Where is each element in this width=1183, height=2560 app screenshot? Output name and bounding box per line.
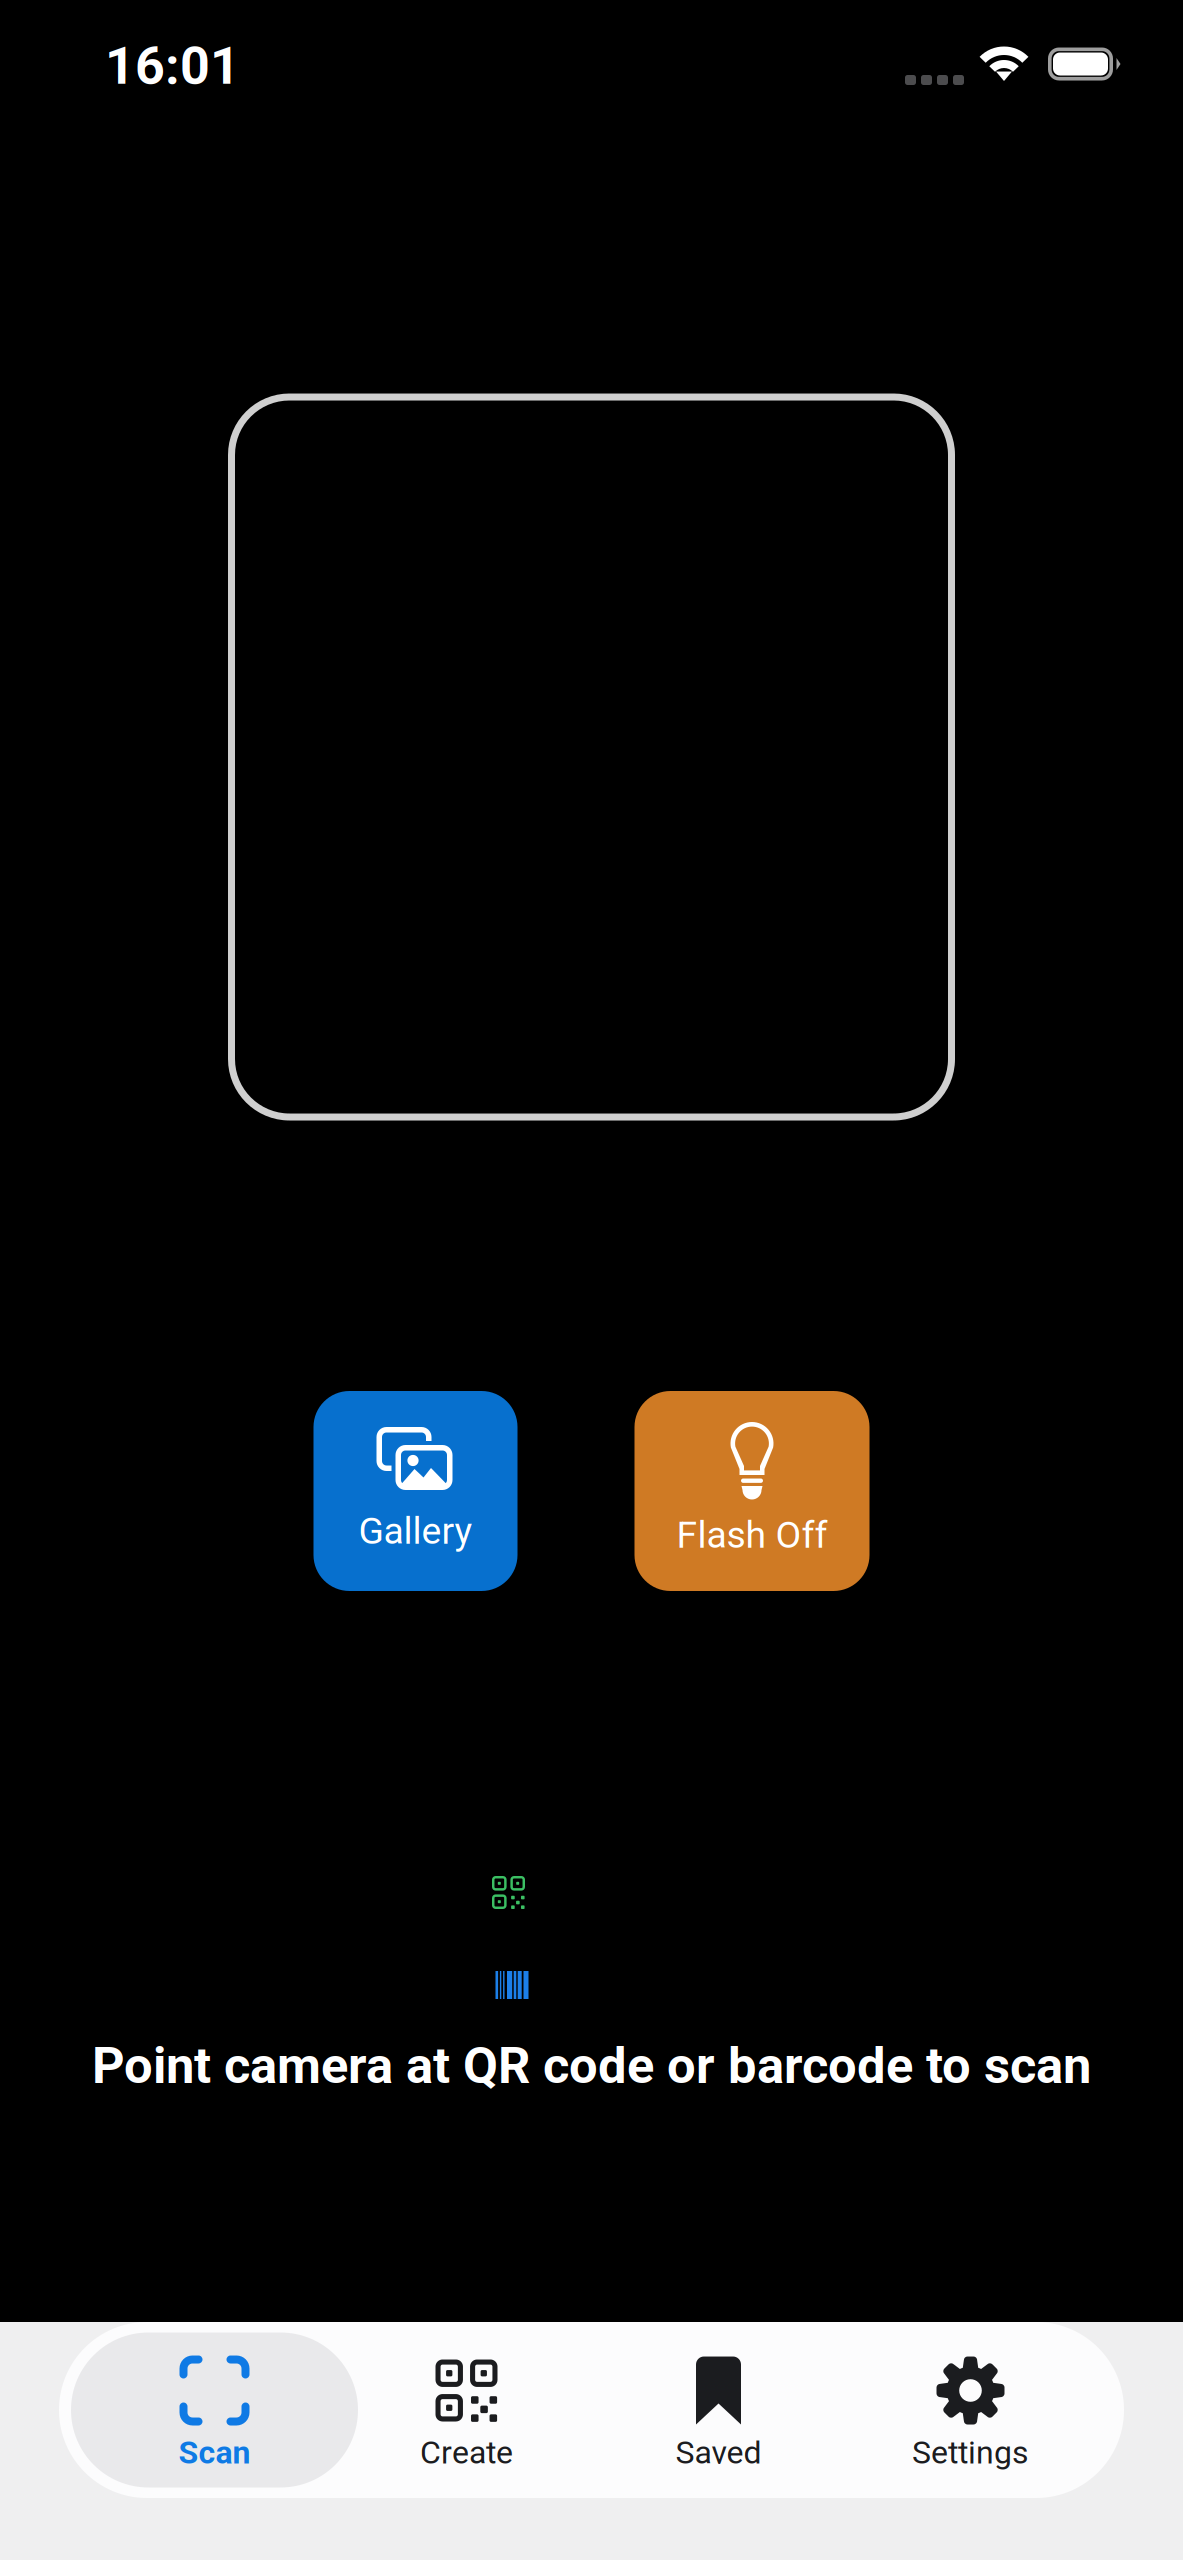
button[interactable]: Saved: [575, 2332, 862, 2487]
staticText: 16:01: [105, 35, 240, 96]
staticText: Flash Off: [676, 1513, 827, 1557]
staticText: Point camera at QR code or barcode to sc…: [92, 2036, 1091, 2095]
button[interactable]: Scan: [71, 2332, 358, 2487]
button[interactable]: Settings: [827, 2332, 1114, 2487]
staticText: Create: [420, 2434, 513, 2471]
button[interactable]: Gallery: [313, 1391, 517, 1591]
button[interactable]: Flash Off: [634, 1391, 869, 1591]
button[interactable]: Create: [323, 2332, 610, 2487]
staticText: Saved: [675, 2434, 761, 2471]
staticText: Scan: [178, 2434, 250, 2471]
staticText: Gallery: [358, 1509, 472, 1553]
staticText: Settings: [912, 2434, 1029, 2471]
